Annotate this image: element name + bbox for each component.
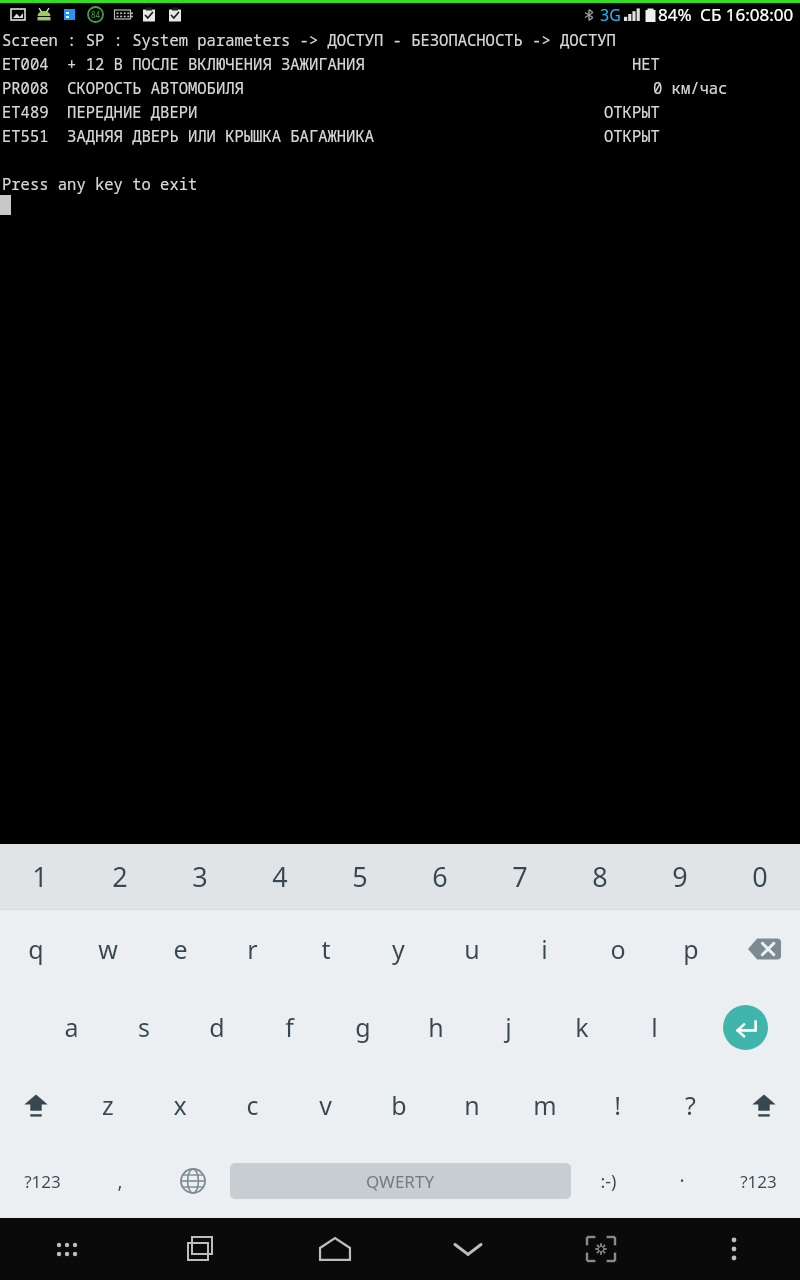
button[interactable]: Recent apps bbox=[134, 1218, 268, 1280]
button[interactable]: x bbox=[144, 1066, 216, 1144]
button[interactable]: · bbox=[646, 1144, 717, 1218]
staticText: p bbox=[683, 932, 699, 966]
button[interactable]: Shift bbox=[727, 1066, 800, 1144]
button[interactable]: 4 bbox=[240, 844, 320, 909]
button[interactable]: v bbox=[289, 1066, 362, 1144]
staticText: 6 bbox=[432, 858, 448, 895]
staticText: 5 bbox=[352, 858, 368, 895]
staticText: i bbox=[541, 932, 548, 966]
button[interactable]: Menu bbox=[0, 1218, 134, 1280]
staticText: СБ 16:08:00 bbox=[700, 3, 794, 26]
button[interactable]: q bbox=[0, 910, 72, 988]
staticText: 3 bbox=[192, 858, 208, 895]
button[interactable]: 3 bbox=[160, 844, 240, 909]
staticText: 8 bbox=[592, 858, 608, 895]
button[interactable]: i bbox=[508, 910, 581, 988]
staticText: 4 bbox=[272, 858, 288, 895]
staticText: w bbox=[98, 932, 118, 966]
button[interactable]: o bbox=[581, 910, 654, 988]
button[interactable]: ?123 bbox=[0, 1144, 84, 1218]
button[interactable]: QWERTY bbox=[230, 1163, 571, 1199]
staticText: Screen : SP : System parameters -> ДОСТУ… bbox=[2, 29, 616, 50]
button[interactable]: 0 bbox=[720, 844, 800, 909]
staticText: 7 bbox=[512, 858, 528, 895]
button[interactable]: k bbox=[545, 988, 618, 1066]
button[interactable]: 9 bbox=[640, 844, 720, 909]
staticText: 84% bbox=[658, 3, 692, 26]
staticText: ET489 ПЕРЕДНИЕ ДВЕРИ bbox=[2, 101, 198, 122]
button[interactable]: c bbox=[216, 1066, 289, 1144]
staticText: j bbox=[505, 1010, 512, 1044]
staticText: s bbox=[138, 1010, 150, 1044]
staticText: , bbox=[117, 1168, 123, 1194]
staticText: v bbox=[319, 1088, 332, 1122]
button[interactable]: ! bbox=[581, 1066, 654, 1144]
button[interactable]: n bbox=[435, 1066, 508, 1144]
button[interactable]: h bbox=[399, 988, 472, 1066]
staticText: c bbox=[246, 1088, 259, 1122]
button[interactable]: y bbox=[362, 910, 435, 988]
button[interactable]: j bbox=[472, 988, 545, 1066]
staticText: 3G bbox=[600, 4, 621, 26]
staticText: ОТКРЫТ bbox=[604, 101, 660, 122]
staticText: o bbox=[610, 932, 626, 966]
staticText: b bbox=[391, 1088, 407, 1122]
staticText: ET004 + 12 В ПОСЛЕ ВКЛЮЧЕНИЯ ЗАЖИГАНИЯ bbox=[2, 53, 365, 74]
button[interactable]: :-) bbox=[571, 1144, 646, 1218]
staticText: 0 км/час bbox=[653, 77, 728, 98]
button[interactable]: ?123 bbox=[717, 1144, 800, 1218]
staticText: QWERTY bbox=[366, 1170, 435, 1193]
button[interactable]: 5 bbox=[320, 844, 400, 909]
button[interactable]: Hide keyboard bbox=[401, 1218, 534, 1280]
button[interactable]: Shift bbox=[0, 1066, 72, 1144]
staticText: ОТКРЫТ bbox=[604, 125, 660, 146]
staticText: d bbox=[209, 1010, 225, 1044]
button[interactable]: g bbox=[326, 988, 399, 1066]
button[interactable]: 6 bbox=[400, 844, 480, 909]
staticText: u bbox=[464, 932, 480, 966]
button[interactable]: w bbox=[72, 910, 144, 988]
staticText: 1 bbox=[32, 858, 48, 895]
staticText: q bbox=[28, 932, 44, 966]
staticText: m bbox=[533, 1088, 557, 1122]
button[interactable]: More options bbox=[667, 1218, 800, 1280]
staticText: t bbox=[321, 932, 331, 966]
button[interactable]: l bbox=[618, 988, 691, 1066]
button[interactable]: p bbox=[654, 910, 727, 988]
button[interactable]: m bbox=[508, 1066, 581, 1144]
staticText: ? bbox=[685, 1088, 696, 1122]
button[interactable]: Screenshot bbox=[534, 1218, 667, 1280]
staticText: f bbox=[285, 1010, 294, 1044]
button[interactable]: 7 bbox=[480, 844, 560, 909]
button[interactable]: 2 bbox=[80, 844, 160, 909]
button[interactable]: Change language bbox=[155, 1144, 230, 1218]
button[interactable]: d bbox=[180, 988, 253, 1066]
staticText: НЕТ bbox=[632, 53, 660, 74]
button[interactable]: b bbox=[362, 1066, 435, 1144]
button[interactable]: Backspace bbox=[727, 910, 800, 988]
staticText: Press any key to exit bbox=[2, 173, 198, 194]
staticText: g bbox=[355, 1010, 371, 1044]
staticText: · bbox=[679, 1168, 685, 1194]
button[interactable]: t bbox=[289, 910, 362, 988]
staticText: 2 bbox=[112, 858, 128, 895]
button[interactable]: , bbox=[84, 1144, 155, 1218]
button[interactable]: s bbox=[107, 988, 180, 1066]
button[interactable]: r bbox=[216, 910, 289, 988]
button[interactable]: e bbox=[144, 910, 216, 988]
staticText: h bbox=[428, 1010, 444, 1044]
staticText: y bbox=[392, 932, 405, 966]
staticText: n bbox=[464, 1088, 480, 1122]
button[interactable]: 8 bbox=[560, 844, 640, 909]
button[interactable]: Home bbox=[268, 1218, 401, 1280]
button[interactable]: 1 bbox=[0, 844, 80, 909]
staticText: z bbox=[102, 1088, 114, 1122]
staticText: ET551 ЗАДНЯЯ ДВЕРЬ ИЛИ КРЫШКА БАГАЖНИКА bbox=[2, 125, 375, 146]
button[interactable]: f bbox=[253, 988, 326, 1066]
staticText: k bbox=[575, 1010, 589, 1044]
button[interactable]: z bbox=[72, 1066, 144, 1144]
button[interactable]: a bbox=[35, 988, 107, 1066]
button[interactable]: Enter bbox=[691, 988, 800, 1066]
button[interactable]: u bbox=[435, 910, 508, 988]
button[interactable]: ? bbox=[654, 1066, 727, 1144]
